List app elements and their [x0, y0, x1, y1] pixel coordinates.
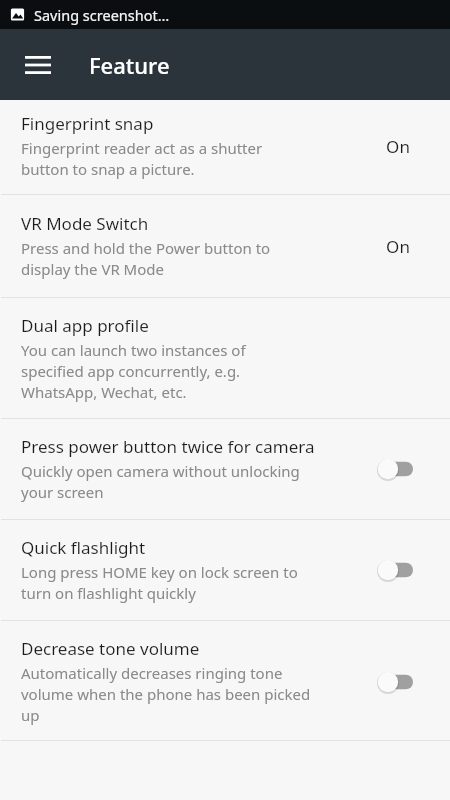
staticText: VR Mode Switch — [21, 212, 149, 235]
staticText: On — [386, 235, 410, 258]
staticText: Press and hold the Power button to displ… — [21, 238, 271, 280]
staticText: Saving screenshot… — [34, 5, 170, 25]
button[interactable]: Toggle setting — [375, 668, 421, 696]
staticText: Feature — [89, 50, 170, 80]
button[interactable]: Quick flashlight — [0, 520, 450, 620]
staticText: Fingerprint reader act as a shutter butt… — [21, 138, 263, 180]
button[interactable]: Fingerprint snap — [0, 100, 450, 194]
staticText: Fingerprint snap — [21, 112, 154, 135]
staticText: Long press HOME key on lock screen to tu… — [21, 562, 298, 604]
staticText: Decrease tone volume — [21, 637, 200, 660]
button[interactable]: VR Mode Switch — [0, 195, 450, 297]
staticText: Press power button twice for camera — [21, 435, 315, 458]
button[interactable]: Decrease tone volume — [0, 621, 450, 740]
button[interactable]: Toggle setting — [375, 455, 421, 483]
button[interactable]: Dual app profile — [0, 298, 450, 418]
staticText: Automatically decreases ringing tone vol… — [21, 663, 311, 726]
button[interactable]: Open navigation menu — [14, 41, 62, 89]
staticText: Quick flashlight — [21, 536, 146, 559]
staticText: Quickly open camera without unlocking yo… — [21, 461, 300, 503]
staticText: You can launch two instances of specifie… — [21, 340, 246, 403]
staticText: Dual app profile — [21, 314, 149, 337]
button[interactable]: Toggle setting — [375, 556, 421, 584]
staticText: On — [386, 135, 410, 158]
button[interactable]: Press power button twice for camera — [0, 419, 450, 519]
